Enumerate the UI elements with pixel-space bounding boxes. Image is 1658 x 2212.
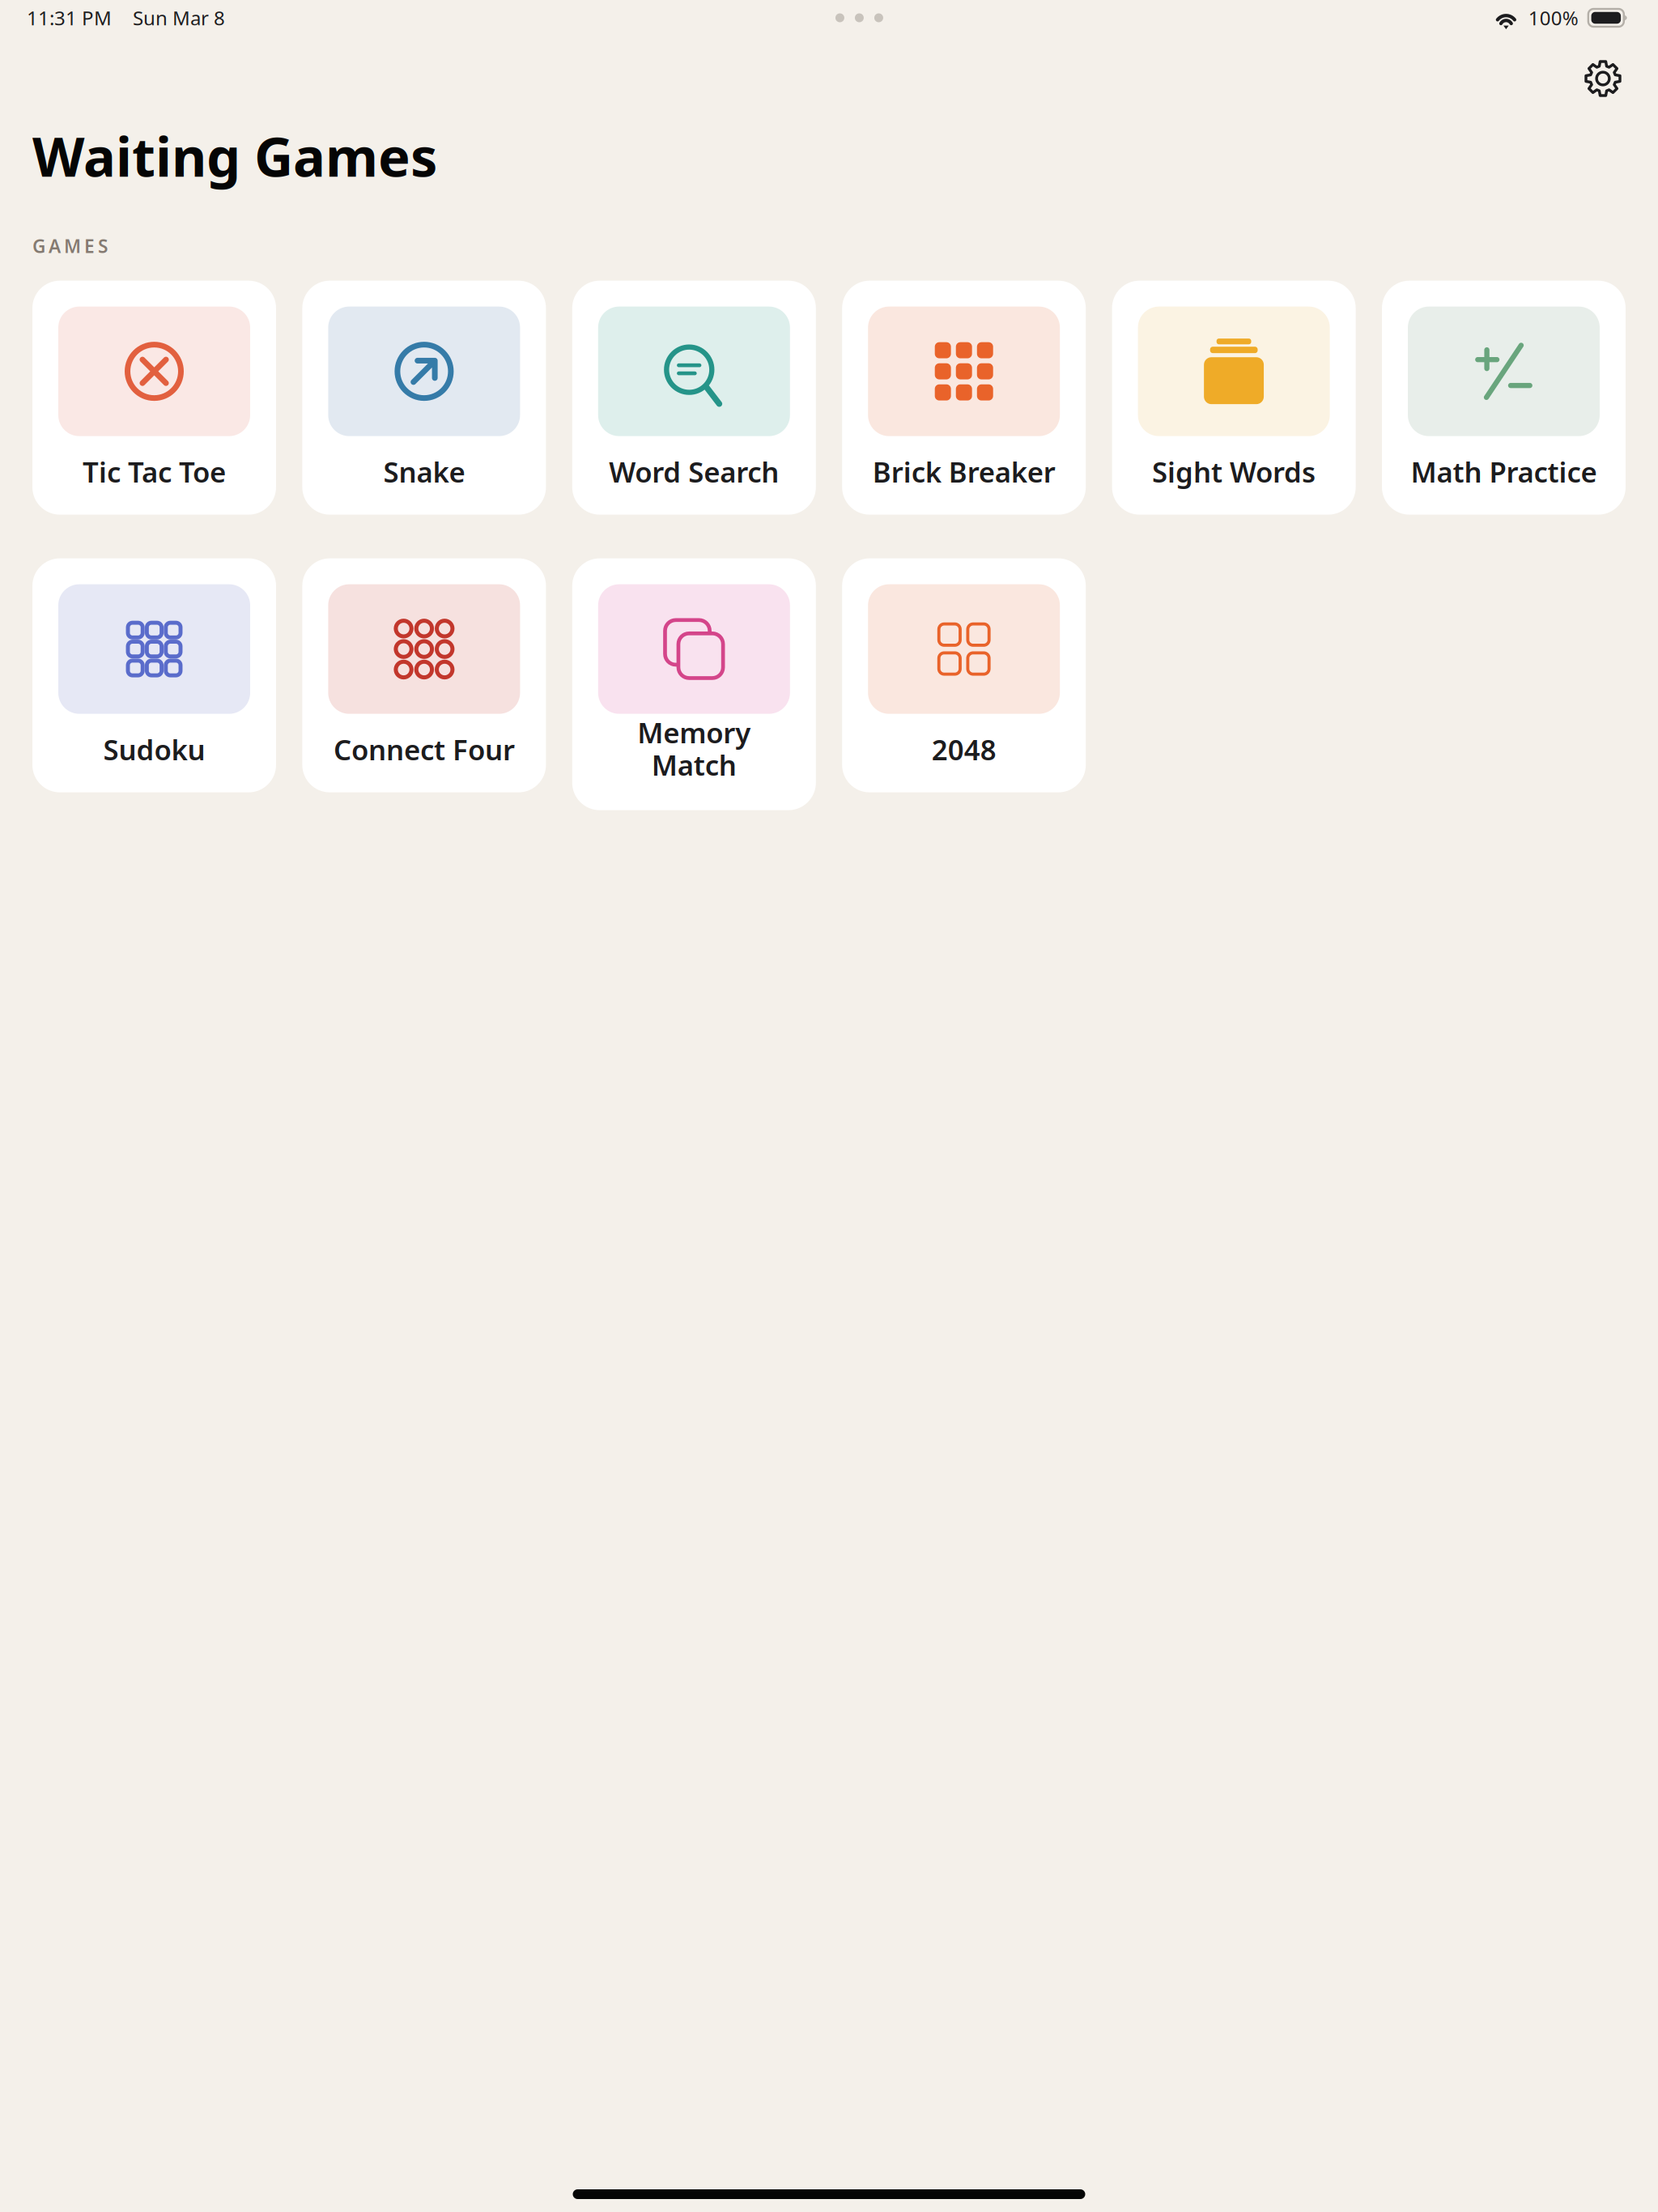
staticText: 100% [1528,5,1579,31]
staticText: 11:31 PM [27,5,112,31]
button[interactable]: Word Search [572,281,816,515]
staticText: Sight Words [1152,453,1316,490]
button[interactable]: 2048 [842,558,1086,792]
button[interactable]: Sudoku [32,558,276,792]
button[interactable]: Connect Four [302,558,546,792]
button[interactable]: Settings [1576,52,1630,105]
staticText: Connect Four [333,731,515,768]
button[interactable]: Tic Tac Toe [32,281,276,515]
staticText: Waiting Games [32,120,437,191]
staticText: Match [652,746,737,783]
staticText: Memory [637,714,751,751]
staticText: Tic Tac Toe [83,453,226,490]
button[interactable]: Brick Breaker [842,281,1086,515]
button[interactable]: Snake [302,281,546,515]
staticText: Sudoku [103,731,205,768]
staticText: Brick Breaker [872,453,1055,490]
staticText: Math Practice [1411,453,1597,490]
staticText: Snake [383,453,465,490]
staticText: G A M E S [32,234,108,258]
staticText: Sun Mar 8 [133,5,225,31]
staticText: 2048 [932,731,996,768]
button[interactable]: Sight Words [1112,281,1356,515]
button[interactable]: Memory [572,558,816,810]
staticText: Word Search [609,453,779,490]
button[interactable]: Math Practice [1382,281,1626,515]
